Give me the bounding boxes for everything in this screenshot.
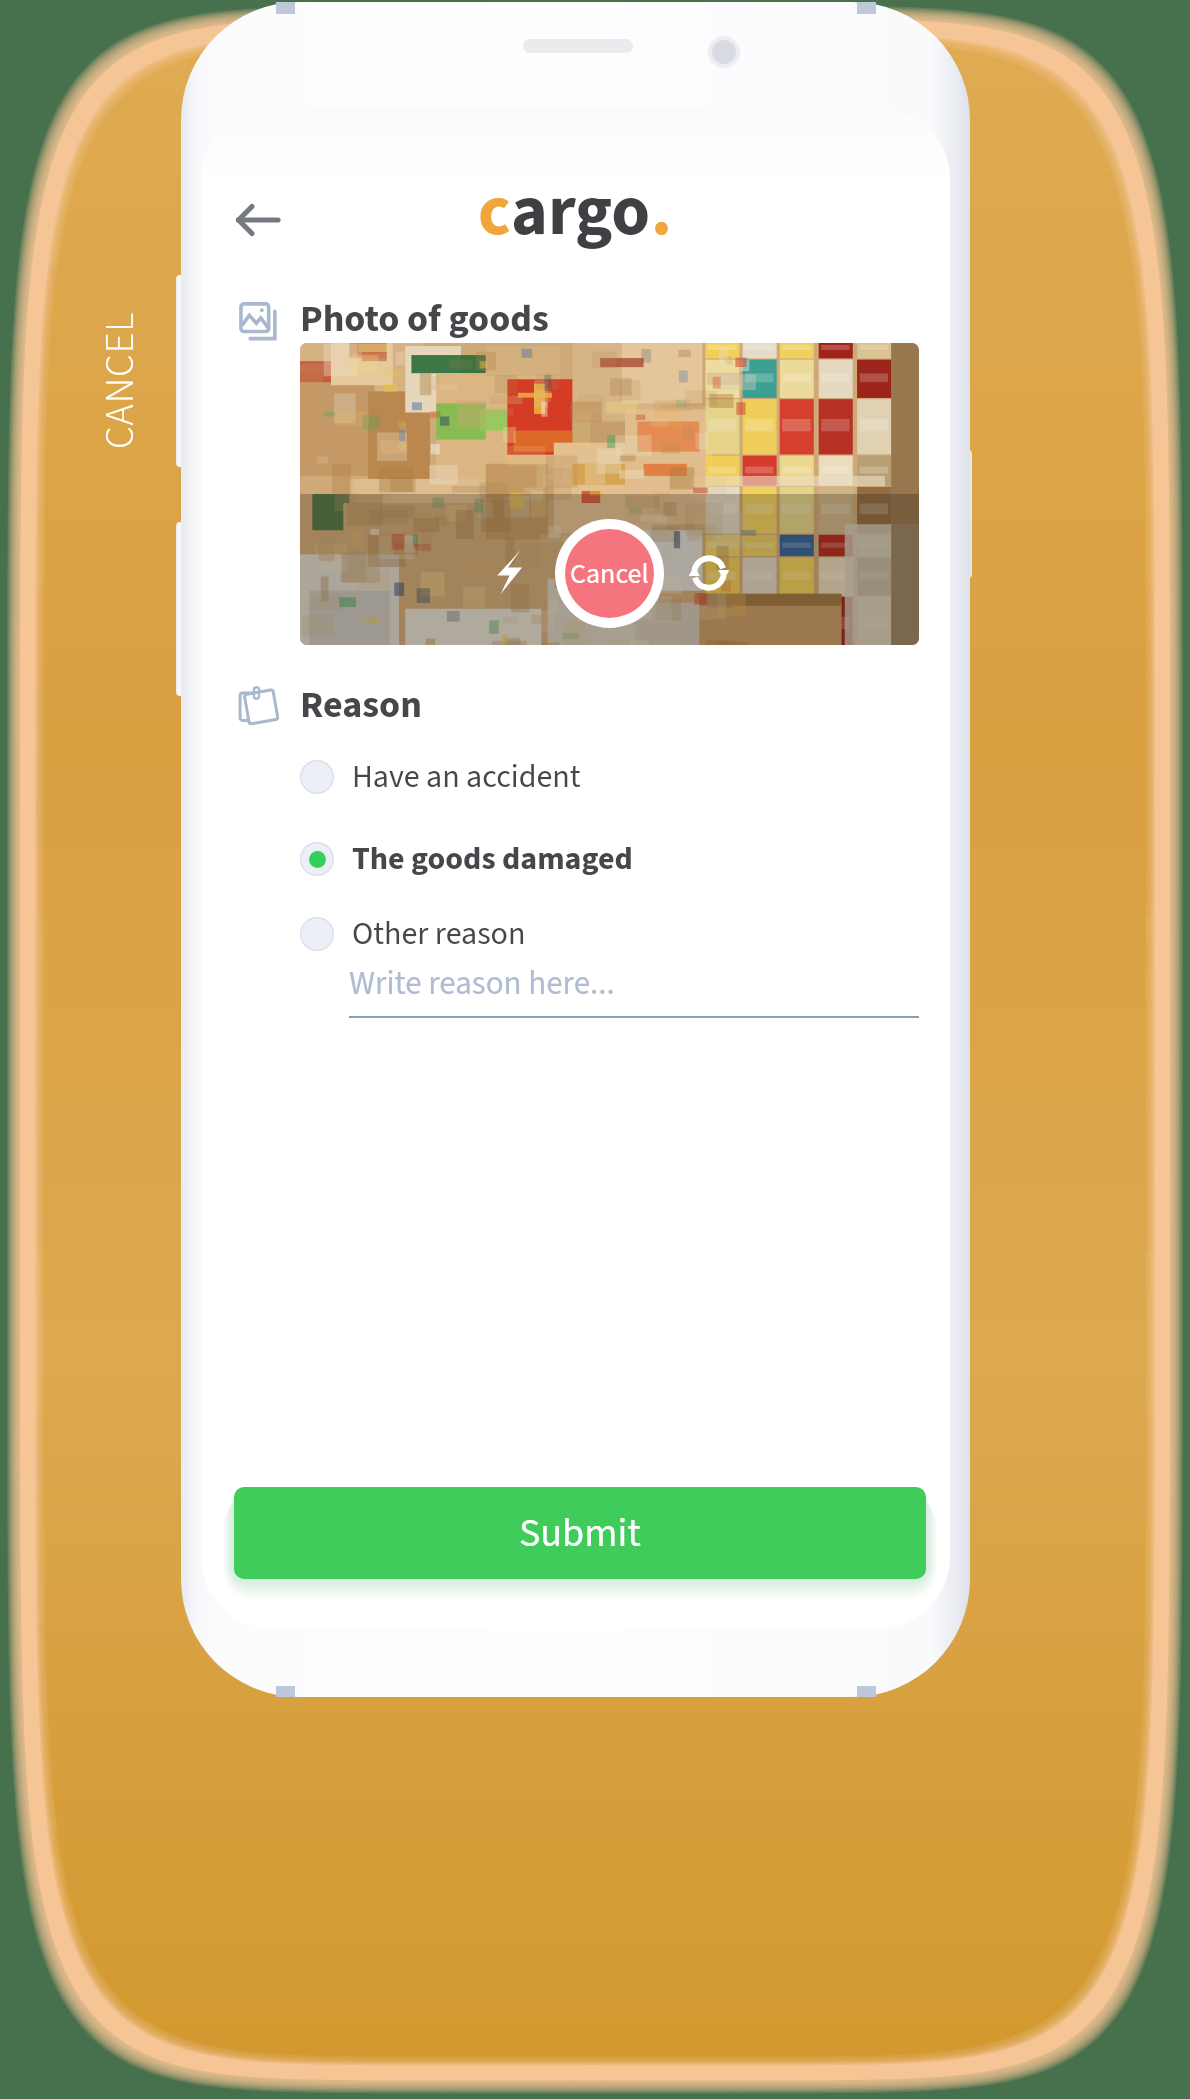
- staticText: CANCEL: [91, 280, 148, 480]
- button[interactable]: Write reason here...: [349, 953, 919, 1015]
- staticText: argo: [511, 162, 651, 262]
- staticText: Reason: [300, 678, 422, 732]
- button[interactable]: Flash: [480, 543, 538, 601]
- button[interactable]: Cancel: [555, 519, 664, 628]
- staticText: The goods damaged: [352, 836, 633, 882]
- staticText: Other reason: [352, 911, 526, 957]
- staticText: Cancel: [570, 554, 649, 594]
- staticText: Write reason here...: [349, 960, 615, 1007]
- staticText: Photo of goods: [300, 292, 549, 346]
- button[interactable]: The goods damaged: [300, 831, 920, 887]
- staticText: Submit: [519, 1505, 641, 1562]
- button[interactable]: Switch camera: [681, 545, 737, 601]
- button[interactable]: Other reason: [300, 906, 920, 962]
- staticText: .: [651, 162, 672, 262]
- staticText: c: [478, 162, 511, 262]
- button[interactable]: Back: [224, 189, 292, 251]
- staticText: Have an accident: [352, 754, 581, 800]
- button[interactable]: Submit: [234, 1487, 926, 1579]
- button[interactable]: Have an accident: [300, 749, 920, 805]
